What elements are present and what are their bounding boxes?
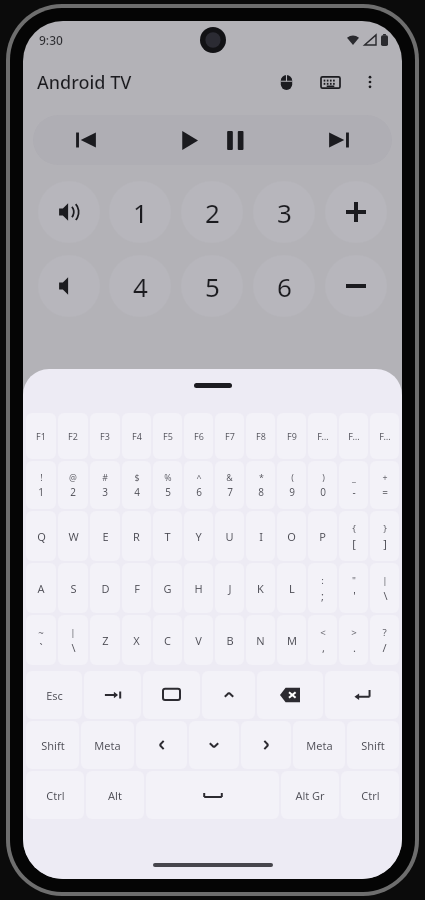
button[interactable]: 2 (58, 461, 88, 509)
button[interactable]: right (241, 721, 291, 769)
button[interactable]: Alt (86, 771, 144, 819)
button[interactable]: H (184, 563, 213, 613)
button[interactable]: Y (184, 511, 213, 561)
button[interactable]: F (122, 563, 151, 613)
button[interactable]: F6 (184, 413, 213, 459)
staticText: 2 (70, 485, 76, 499)
button[interactable]: left (136, 721, 187, 769)
button[interactable] (194, 383, 232, 388)
button[interactable]: B (215, 615, 244, 665)
button[interactable]: O (277, 511, 306, 561)
button[interactable]: Keyboard (312, 64, 348, 100)
button[interactable]: = (370, 461, 399, 509)
button[interactable]: F9 (277, 413, 306, 459)
button[interactable]: X (122, 615, 151, 665)
button[interactable]: E (90, 511, 120, 561)
button[interactable]: Meta (293, 721, 345, 769)
button[interactable]: More options (352, 64, 388, 100)
button[interactable]: A (26, 563, 56, 613)
button[interactable]: Alt Gr (281, 771, 339, 819)
button[interactable]: screen (143, 671, 200, 719)
button[interactable]: 1 (26, 461, 56, 509)
button[interactable]: ` (26, 615, 56, 665)
button[interactable]: R (122, 511, 151, 561)
button[interactable]: 0 (308, 461, 337, 509)
button[interactable]: F3 (90, 413, 120, 459)
button[interactable]: . (339, 615, 368, 665)
button[interactable]: Esc (26, 671, 82, 719)
button[interactable]: N (246, 615, 275, 665)
button[interactable]: F2 (58, 413, 88, 459)
button[interactable]: down (189, 721, 239, 769)
button[interactable]: 3 (90, 461, 120, 509)
staticText: F3 (100, 430, 110, 442)
button[interactable]: C (153, 615, 182, 665)
button[interactable]: Next (286, 115, 392, 165)
button[interactable]: Volume up (38, 181, 100, 243)
button[interactable]: 4 (109, 255, 171, 317)
button[interactable]: ' (339, 563, 368, 613)
button[interactable]: Meta (81, 721, 134, 769)
button[interactable]: 9 (277, 461, 306, 509)
button[interactable]: I (246, 511, 275, 561)
button[interactable]: U (215, 511, 244, 561)
button[interactable]: Ctrl (341, 771, 399, 819)
button[interactable]: 6 (253, 255, 315, 317)
button[interactable]: 5 (181, 255, 243, 317)
button[interactable]: 2 (181, 181, 243, 243)
button[interactable]: F5 (153, 413, 182, 459)
button[interactable]: ; (308, 563, 337, 613)
button[interactable]: 4 (122, 461, 151, 509)
button[interactable]: Channel up (325, 181, 387, 243)
button[interactable]: 8 (246, 461, 275, 509)
button[interactable]: space (146, 771, 279, 819)
button[interactable]: 3 (253, 181, 315, 243)
button[interactable]: 7 (215, 461, 244, 509)
button[interactable]: [ (339, 511, 368, 561)
button[interactable]: backspace (257, 671, 323, 719)
button[interactable]: Touchpad (268, 64, 304, 100)
button[interactable]: L (277, 563, 306, 613)
button[interactable]: F1 (26, 413, 56, 459)
button[interactable]: F8 (246, 413, 275, 459)
button[interactable]: F… (339, 413, 368, 459)
button[interactable]: Previous (33, 115, 138, 165)
button[interactable]: - (339, 461, 368, 509)
button[interactable]: Shift (26, 721, 79, 769)
button[interactable]: Z (90, 615, 120, 665)
button[interactable]: F… (370, 413, 399, 459)
button[interactable]: F4 (122, 413, 151, 459)
button[interactable]: Channel down (325, 255, 387, 317)
button[interactable]: K (246, 563, 275, 613)
button[interactable]: up (202, 671, 255, 719)
button[interactable]: S (58, 563, 88, 613)
button[interactable]: T (153, 511, 182, 561)
button[interactable]: tab (84, 671, 141, 719)
staticText: 7 (227, 485, 233, 499)
staticText: ] (383, 536, 387, 551)
button[interactable]: F… (308, 413, 337, 459)
button[interactable]: Pause (212, 117, 258, 163)
button[interactable]: 6 (184, 461, 213, 509)
button[interactable]: ] (370, 511, 399, 561)
button[interactable]: / (370, 615, 399, 665)
button[interactable]: V (184, 615, 213, 665)
button[interactable]: G (153, 563, 182, 613)
button[interactable]: 1 (109, 181, 171, 243)
button[interactable]: enter (325, 671, 399, 719)
button[interactable]: Shift (347, 721, 399, 769)
button[interactable]: P (308, 511, 337, 561)
button[interactable]: F7 (215, 413, 244, 459)
button[interactable]: Ctrl (26, 771, 84, 819)
button[interactable]: , (308, 615, 337, 665)
button[interactable]: Q (26, 511, 56, 561)
button[interactable]: D (90, 563, 120, 613)
button[interactable]: Play (166, 117, 212, 163)
button[interactable]: \ (370, 563, 399, 613)
button[interactable]: J (215, 563, 244, 613)
button[interactable]: 5 (153, 461, 182, 509)
button[interactable]: W (58, 511, 88, 561)
button[interactable]: Volume down (38, 255, 100, 317)
button[interactable]: \ (58, 615, 88, 665)
button[interactable]: M (277, 615, 306, 665)
